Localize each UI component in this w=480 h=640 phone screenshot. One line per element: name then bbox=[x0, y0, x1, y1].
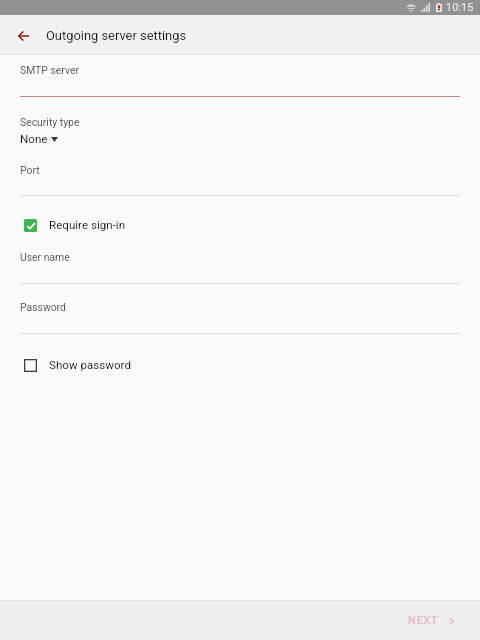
button[interactable]: NEXT bbox=[394, 606, 468, 635]
staticText: 10:15 bbox=[446, 1, 474, 14]
staticText: Security type bbox=[20, 116, 80, 128]
staticText: SMTP server bbox=[20, 64, 79, 76]
button[interactable] bbox=[0, 158, 480, 198]
button[interactable] bbox=[0, 245, 480, 285]
staticText: Outgoing server settings bbox=[46, 28, 187, 43]
staticText: Require sign-in bbox=[49, 218, 126, 232]
button[interactable]: None bbox=[0, 128, 480, 150]
staticText: Password bbox=[20, 301, 66, 313]
button[interactable] bbox=[0, 295, 480, 335]
staticText: Show password bbox=[49, 358, 131, 372]
staticText: NEXT bbox=[408, 614, 439, 627]
staticText: User name bbox=[20, 251, 70, 263]
button[interactable]: Back bbox=[6, 19, 40, 53]
staticText: Port bbox=[20, 164, 40, 176]
button[interactable]: Require sign-in bbox=[0, 209, 480, 242]
button[interactable] bbox=[0, 59, 480, 99]
staticText: None bbox=[20, 132, 48, 146]
button[interactable]: Show password bbox=[0, 349, 480, 382]
